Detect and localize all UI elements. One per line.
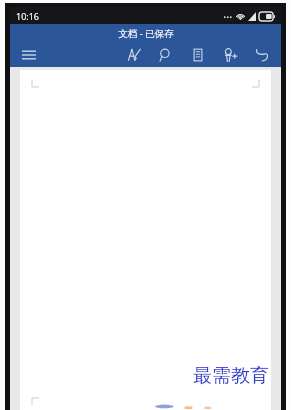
staticText: 文档 - 已保存 — [118, 27, 174, 40]
staticText: 10:16 — [16, 10, 40, 22]
button[interactable]: Ink — [123, 44, 145, 66]
button[interactable]: Share — [219, 44, 241, 66]
staticText: 最需教育 — [193, 364, 269, 388]
button[interactable]: Menu — [16, 42, 42, 67]
button[interactable]: Undo — [251, 44, 273, 66]
button[interactable]: Layout — [187, 44, 209, 66]
button[interactable]: Search — [155, 44, 177, 66]
